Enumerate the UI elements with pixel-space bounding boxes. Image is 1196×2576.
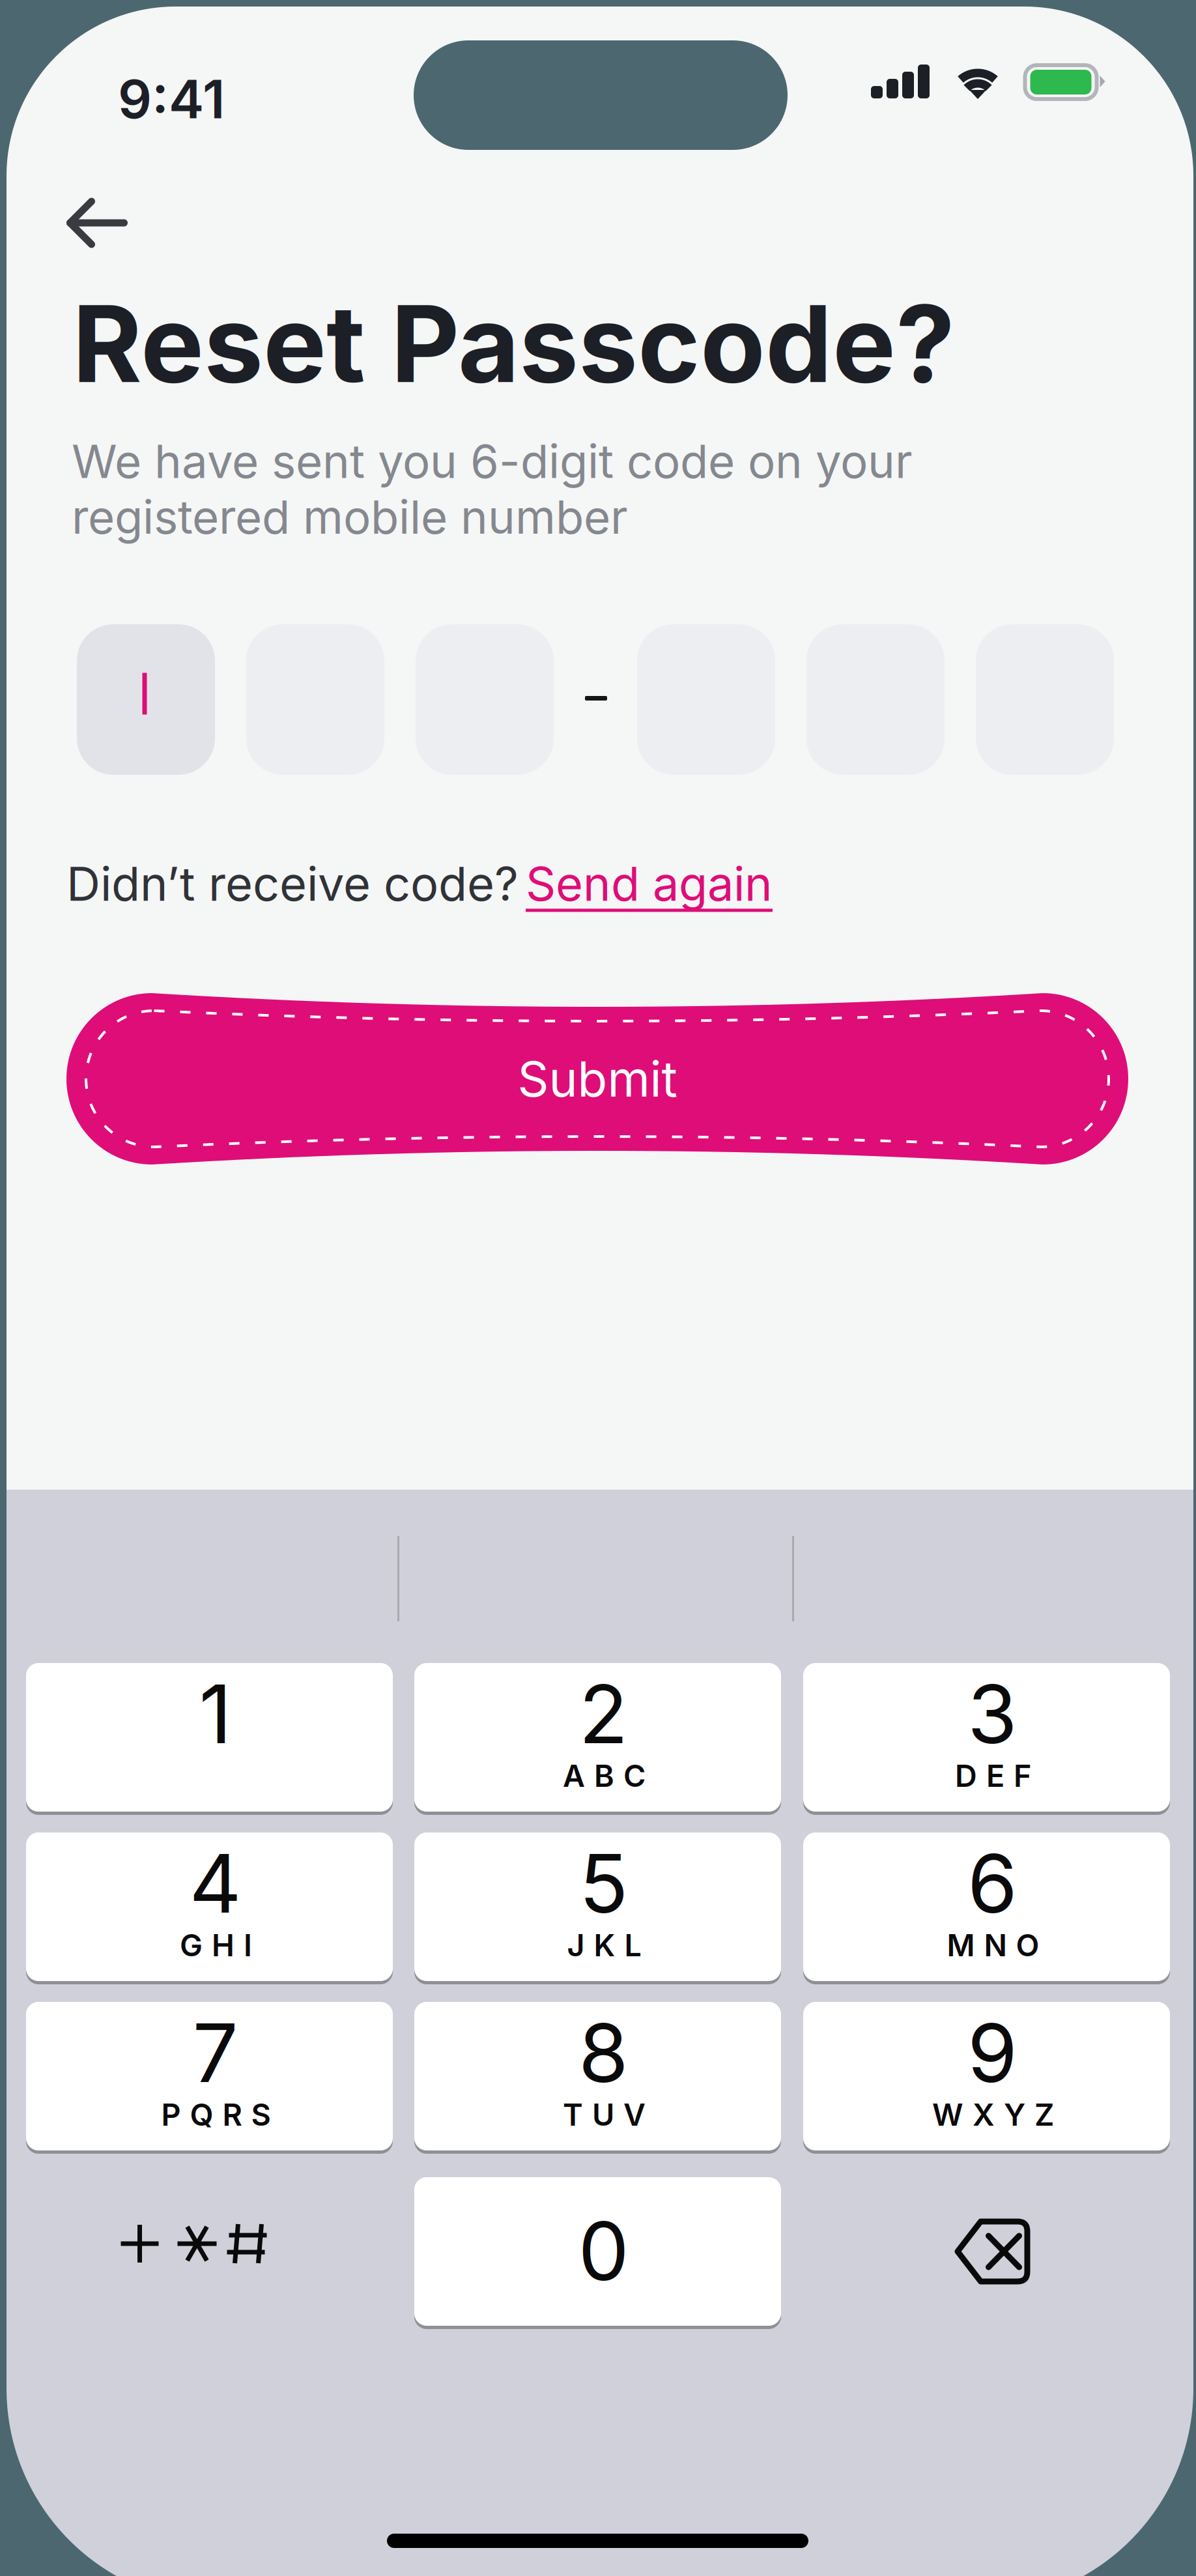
staticText: PQRS (161, 2096, 271, 2133)
staticText: 4 (189, 1834, 241, 1932)
staticText: Submit (518, 1049, 677, 1108)
staticText: 7 (192, 2004, 238, 2102)
staticText: 2 (579, 1665, 628, 1763)
staticText: Send again (526, 855, 773, 912)
staticText: 6 (967, 1834, 1018, 1932)
button[interactable]: 2 (414, 1663, 781, 1812)
button[interactable]: Delete (803, 2177, 1170, 2326)
button[interactable]: 7 (26, 2002, 393, 2150)
staticText: 9:41 (118, 67, 225, 131)
staticText: TUV (563, 2096, 646, 2133)
button[interactable]: Digit 1 (77, 624, 215, 775)
staticText: 1 (199, 1665, 232, 1763)
staticText: Didn’t receive code? (66, 855, 519, 912)
button[interactable]: 1 (26, 1663, 393, 1812)
button[interactable]: 9 (803, 2002, 1170, 2150)
staticText: 8 (578, 2004, 629, 2102)
staticText: Reset Passcode? (72, 279, 955, 408)
button[interactable]: 0 (414, 2177, 781, 2326)
staticText: We have sent you 6-digit code on your re… (72, 433, 913, 545)
staticText: 0 (578, 2202, 629, 2300)
staticText: MNO (947, 1927, 1039, 1964)
button[interactable]: 5 (414, 1832, 781, 1981)
button[interactable]: 6 (803, 1832, 1170, 1981)
staticText: JKL (567, 1927, 641, 1964)
button[interactable]: 8 (414, 2002, 781, 2150)
staticText: 9 (967, 2004, 1018, 2102)
staticText: ABC (563, 1757, 646, 1794)
button[interactable]: Send again (526, 850, 799, 918)
button[interactable]: Submit (66, 993, 1128, 1165)
button[interactable]: 4 (26, 1832, 393, 1981)
staticText: GHI (180, 1927, 252, 1964)
button[interactable]: 3 (803, 1663, 1170, 1812)
staticText: 3 (967, 1665, 1018, 1763)
staticText: 5 (579, 1834, 628, 1932)
staticText: WXYZ (932, 2096, 1054, 2133)
button[interactable]: Back (36, 177, 158, 268)
staticText: DEF (955, 1757, 1031, 1794)
button[interactable]: Symbols (26, 2177, 393, 2326)
